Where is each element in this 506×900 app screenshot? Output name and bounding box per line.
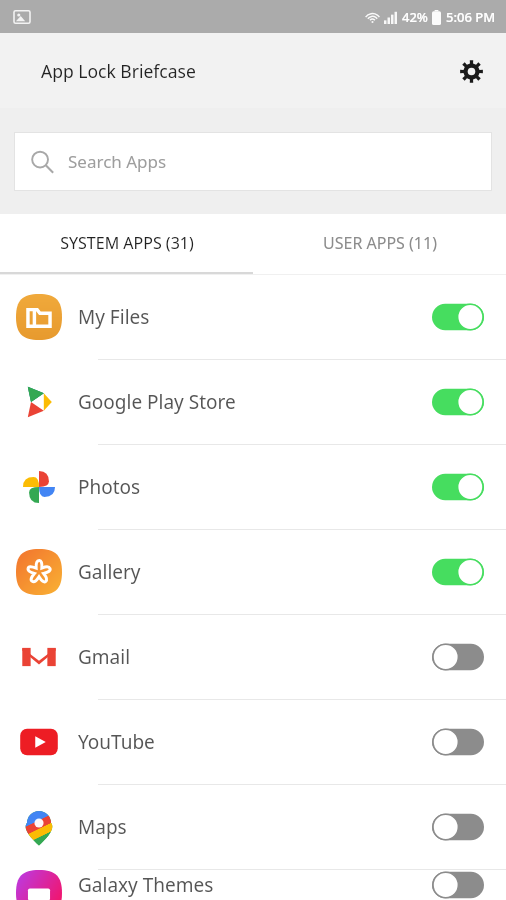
staticText: Gallery <box>78 559 432 585</box>
button[interactable]: Lock disabled <box>432 812 484 842</box>
staticText: App Lock Briefcase <box>41 59 196 83</box>
button[interactable]: Galaxy Themes <box>0 870 506 900</box>
staticText: YouTube <box>78 729 432 755</box>
button[interactable]: Lock enabled <box>432 472 484 502</box>
button[interactable]: Lock enabled <box>432 302 484 332</box>
staticText: Gmail <box>78 644 432 670</box>
button[interactable]: USER APPS (11) <box>253 214 506 272</box>
button[interactable]: Photos <box>0 445 506 529</box>
button[interactable]: Lock enabled <box>432 557 484 587</box>
button[interactable]: Gmail <box>0 615 506 699</box>
button[interactable]: Google Play Store <box>0 360 506 444</box>
staticText: USER APPS (11) <box>323 232 437 254</box>
button[interactable]: Lock disabled <box>432 870 484 900</box>
staticText: 42% <box>402 8 428 26</box>
button[interactable]: Settings <box>448 48 494 94</box>
button[interactable]: Lock disabled <box>432 727 484 757</box>
staticText: 5:06 PM <box>446 8 496 26</box>
button[interactable]: Maps <box>0 785 506 869</box>
button[interactable]: SYSTEM APPS (31) <box>0 214 253 272</box>
button[interactable]: Lock enabled <box>432 387 484 417</box>
staticText: Photos <box>78 474 432 500</box>
staticText: My Files <box>78 304 432 330</box>
button[interactable]: Lock disabled <box>432 642 484 672</box>
button[interactable]: My Files <box>0 275 506 359</box>
button[interactable]: Search Apps <box>14 132 492 191</box>
button[interactable]: Gallery <box>0 530 506 614</box>
button[interactable]: YouTube <box>0 700 506 784</box>
staticText: Galaxy Themes <box>78 872 432 898</box>
staticText: Google Play Store <box>78 389 432 415</box>
staticText: Maps <box>78 814 432 840</box>
staticText: SYSTEM APPS (31) <box>60 232 194 254</box>
staticText: Search Apps <box>68 150 167 173</box>
